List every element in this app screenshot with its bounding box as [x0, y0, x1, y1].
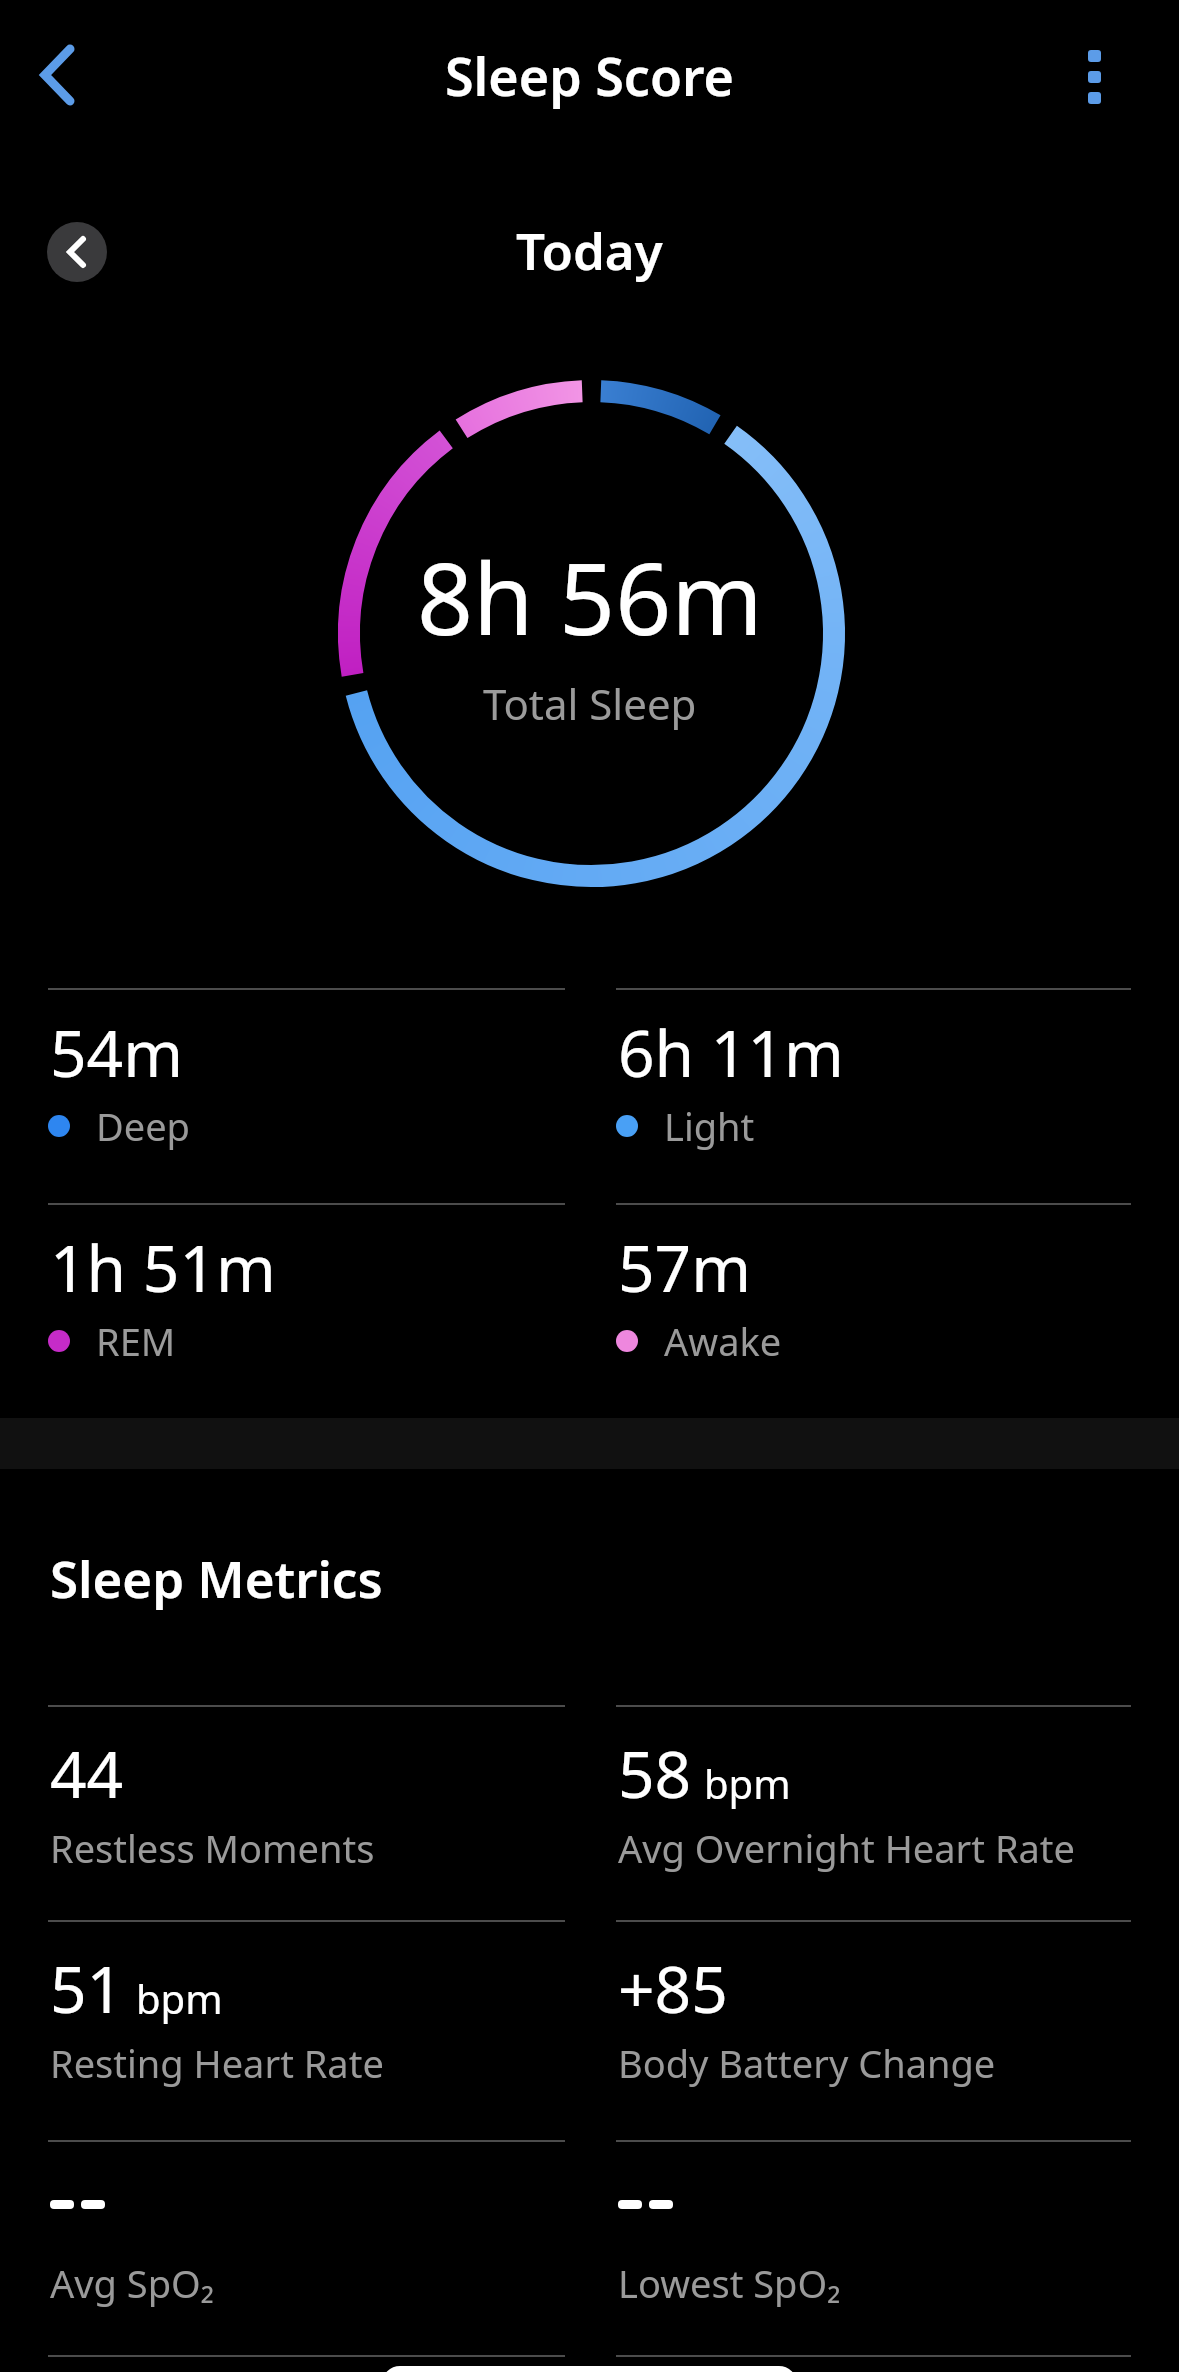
staticText: Avg SpO₂	[50, 2257, 215, 2309]
staticText: Today	[516, 215, 663, 284]
staticText: Awake	[664, 1315, 782, 1367]
staticText: 6h 11m	[618, 1009, 844, 1096]
button[interactable]	[616, 1705, 1131, 1925]
staticText: 51	[50, 1945, 124, 2032]
staticText: Body Battery Change	[618, 2037, 996, 2089]
staticText: Resting Heart Rate	[50, 2037, 384, 2089]
staticText: 1h 51m	[50, 1224, 276, 1311]
staticText: 44	[50, 1730, 124, 1817]
button[interactable]	[616, 1920, 1131, 2140]
staticText: Restless Moments	[50, 1822, 375, 1874]
staticText: Lowest SpO₂	[618, 2257, 841, 2309]
staticText: REM	[96, 1315, 176, 1367]
button[interactable]	[48, 2140, 565, 2360]
button[interactable]	[1066, 36, 1124, 116]
staticText: bpm	[704, 1756, 791, 1810]
staticText: Sleep Score	[445, 40, 734, 111]
staticText: +85	[618, 1945, 728, 2032]
staticText: 8h 56m	[417, 530, 763, 650]
button[interactable]	[48, 1920, 565, 2140]
staticText: 57m	[618, 1224, 752, 1311]
button[interactable]	[20, 40, 100, 116]
staticText: 54m	[50, 1009, 184, 1096]
staticText: Avg Overnight Heart Rate	[618, 1822, 1075, 1874]
staticText: bpm	[136, 1971, 223, 2025]
staticText: Total Sleep	[483, 675, 697, 732]
staticText: 58	[618, 1730, 692, 1817]
button[interactable]	[47, 222, 107, 282]
staticText: Sleep Metrics	[50, 1543, 383, 1612]
button[interactable]	[382, 2366, 797, 2372]
button[interactable]	[48, 1705, 565, 1925]
staticText: Light	[664, 1100, 755, 1152]
button[interactable]	[616, 2140, 1131, 2360]
staticText: Deep	[96, 1100, 190, 1152]
